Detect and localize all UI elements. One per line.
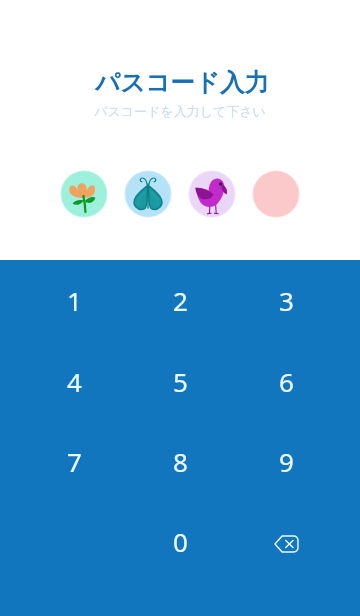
button[interactable]: 2 (127, 260, 233, 340)
staticText: 0 (173, 524, 188, 559)
staticText: 2 (173, 283, 188, 318)
staticText: 4 (67, 364, 82, 399)
staticText: パスコードを入力して下さい (94, 103, 266, 119)
staticText: 9 (279, 444, 294, 479)
button[interactable]: 3 (233, 260, 339, 340)
staticText: パスコード入力 (95, 67, 269, 98)
button[interactable]: 7 (21, 421, 127, 501)
other: Backspace (275, 536, 298, 552)
staticText: 5 (173, 364, 188, 399)
button[interactable]: 4 (21, 341, 127, 421)
button[interactable]: 6 (233, 341, 339, 421)
button[interactable]: 0 (127, 501, 233, 581)
button[interactable]: 1 (21, 260, 127, 340)
staticText: 1 (67, 283, 82, 318)
staticText: 6 (279, 364, 294, 399)
button[interactable]: 8 (127, 421, 233, 501)
button[interactable]: Backspace (233, 501, 339, 581)
button[interactable]: 9 (233, 421, 339, 501)
button[interactable]: 5 (127, 341, 233, 421)
staticText: 8 (173, 444, 188, 479)
staticText: 3 (279, 283, 294, 318)
staticText: 7 (67, 444, 82, 479)
